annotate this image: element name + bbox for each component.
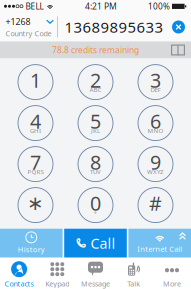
button[interactable]: 6 [125,103,185,144]
staticText [154,208,156,217]
staticText: + [93,208,97,217]
staticText: MNO [147,126,163,135]
staticText: Keypad [45,279,69,288]
button[interactable]: Call rates [171,44,191,55]
staticText: 9 [150,149,161,176]
staticText [34,85,36,94]
button[interactable]: 2 [65,62,125,103]
staticText: # [149,190,162,217]
staticText: 6 [150,108,161,135]
staticText: ∗ [27,192,44,215]
button[interactable]: 3 [125,62,185,103]
staticText: PQRS [27,167,43,176]
button[interactable]: Keypad [38,258,76,289]
staticText: More [163,279,181,288]
staticText: 4:21 PM [85,0,117,12]
button[interactable]: Message [76,258,115,289]
staticText: 5 [90,108,101,135]
button[interactable]: 0 [65,185,125,226]
staticText: 8 [90,149,101,176]
staticText: 3 [150,67,161,94]
staticText: 2 [90,67,101,94]
staticText: 78.8 credits remaining [52,44,139,56]
button[interactable]: Call [64,229,127,258]
staticText: History [18,244,45,255]
button[interactable]: 4 [5,103,65,144]
staticText: WXYZ [147,167,164,176]
button[interactable]: 8 [65,144,125,185]
button[interactable]: Talk [115,258,153,289]
staticText: ABC [89,85,101,94]
button[interactable]: 9 [125,144,185,185]
button[interactable]: 7 [5,144,65,185]
button[interactable]: History [0,229,63,258]
button[interactable]: More [153,258,191,289]
staticText [34,208,36,217]
button[interactable]: # [125,185,185,226]
staticText: 100% [148,1,170,12]
staticText: GHI [30,126,41,135]
button[interactable]: 5 [65,103,125,144]
staticText: Talk [127,279,140,288]
staticText: BELL [25,1,43,12]
staticText: Internet Call [137,244,182,254]
staticText: 1 [30,67,41,94]
button[interactable]: Internet Call [128,229,191,258]
button[interactable]: 1 [5,62,65,103]
button[interactable]: +1268 [0,12,57,41]
staticText: Message [81,279,110,288]
staticText: JKL [91,126,100,135]
staticText: 7 [30,149,41,176]
staticText: 4 [30,108,41,135]
button[interactable]: ∗ [5,185,65,226]
staticText: DEF [150,85,160,94]
staticText: Call [90,234,115,253]
button[interactable]: Clear [166,12,191,41]
staticText: 0 [90,190,101,217]
button[interactable]: Contacts [0,258,38,289]
staticText: Country Code [5,29,51,38]
staticText: Contacts [5,279,34,288]
staticText: TUV [90,167,101,176]
staticText: 13689895633 [64,17,163,37]
staticText: +1268 [5,16,30,28]
